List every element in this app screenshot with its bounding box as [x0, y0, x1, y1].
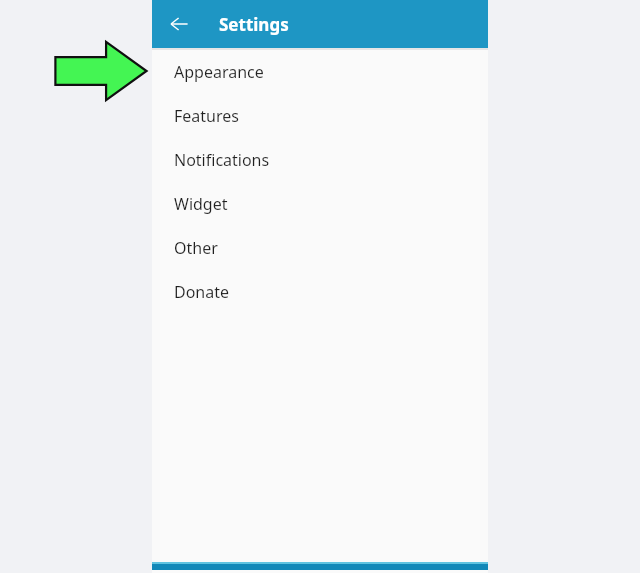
- staticText: Appearance: [174, 61, 264, 83]
- staticText: Features: [174, 105, 239, 127]
- staticText: Notifications: [174, 149, 270, 171]
- button[interactable]: Appearance: [152, 50, 488, 94]
- staticText: Other: [174, 237, 218, 259]
- button[interactable]: Other: [152, 226, 488, 270]
- button[interactable]: Features: [152, 94, 488, 138]
- staticText: Settings: [219, 13, 289, 36]
- button[interactable]: Notifications: [152, 138, 488, 182]
- button[interactable]: Navigate up: [161, 6, 197, 42]
- staticText: Donate: [174, 281, 230, 303]
- button[interactable]: Donate: [152, 270, 488, 314]
- button[interactable]: Widget: [152, 182, 488, 226]
- staticText: Widget: [174, 193, 228, 215]
